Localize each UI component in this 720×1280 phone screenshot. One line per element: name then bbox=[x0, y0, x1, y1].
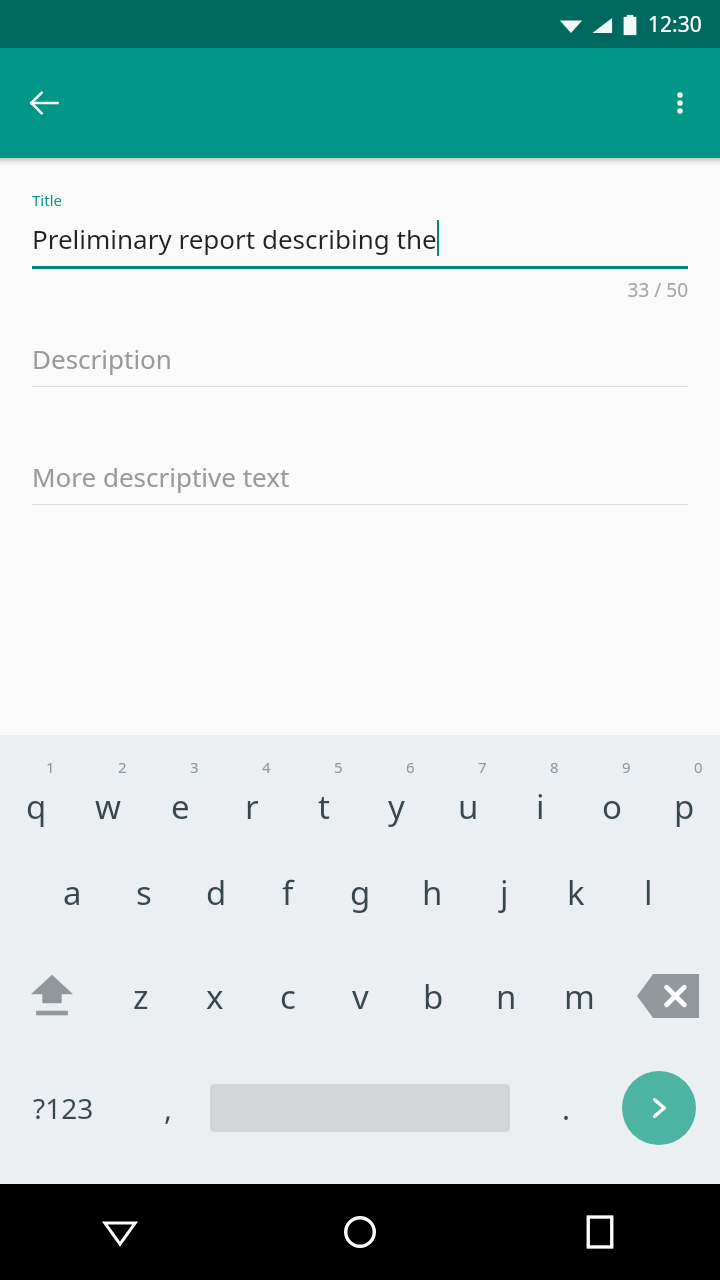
button[interactable]: k bbox=[540, 861, 612, 923]
button[interactable]: r bbox=[216, 757, 288, 835]
button[interactable]: y bbox=[360, 757, 432, 835]
staticText: 7 bbox=[478, 757, 487, 777]
staticText: u bbox=[458, 784, 479, 829]
staticText: y bbox=[388, 784, 405, 829]
staticText: x bbox=[206, 974, 224, 1019]
staticText: ?123 bbox=[33, 1089, 94, 1127]
staticText: 12:30 bbox=[648, 10, 702, 39]
staticText: q bbox=[26, 784, 47, 829]
staticText: 8 bbox=[550, 757, 559, 777]
staticText: n bbox=[496, 974, 517, 1019]
staticText: j bbox=[500, 870, 509, 915]
button[interactable]: h bbox=[396, 861, 468, 923]
button[interactable]: v bbox=[324, 965, 397, 1027]
button[interactable]: More descriptive text bbox=[32, 459, 688, 505]
staticText: d bbox=[206, 870, 227, 915]
button[interactable]: e bbox=[144, 757, 216, 835]
staticText: l bbox=[644, 870, 653, 915]
staticText: e bbox=[171, 784, 190, 829]
staticText: , bbox=[164, 1088, 173, 1129]
button[interactable]: l bbox=[612, 861, 684, 923]
staticText: v bbox=[352, 974, 369, 1019]
button[interactable]: m bbox=[543, 965, 616, 1027]
button[interactable]: z bbox=[104, 965, 178, 1027]
button[interactable]: Back bbox=[16, 75, 72, 131]
staticText: h bbox=[422, 870, 443, 915]
staticText: w bbox=[95, 784, 121, 829]
button[interactable]: f bbox=[252, 861, 324, 923]
staticText: Title bbox=[32, 190, 62, 210]
staticText: i bbox=[536, 784, 545, 829]
staticText: Preliminary report describing the bbox=[32, 221, 437, 256]
button[interactable]: . bbox=[510, 1069, 622, 1147]
staticText: 0 bbox=[694, 757, 703, 777]
staticText: m bbox=[564, 974, 595, 1019]
staticText: 1 bbox=[46, 757, 55, 777]
button[interactable]: Enter bbox=[622, 1071, 696, 1145]
staticText: 6 bbox=[406, 757, 415, 777]
staticText: f bbox=[282, 870, 294, 915]
button[interactable]: a bbox=[36, 861, 108, 923]
button[interactable]: g bbox=[324, 861, 396, 923]
button[interactable]: j bbox=[468, 861, 540, 923]
button[interactable]: q bbox=[0, 757, 72, 835]
staticText: k bbox=[567, 870, 585, 915]
staticText: 2 bbox=[118, 757, 127, 777]
staticText: o bbox=[602, 784, 622, 829]
button[interactable]: Back bbox=[0, 1184, 240, 1280]
staticText: More descriptive text bbox=[32, 459, 290, 494]
button[interactable]: b bbox=[397, 965, 470, 1027]
button[interactable]: More options bbox=[652, 75, 708, 131]
staticText: z bbox=[133, 974, 149, 1019]
staticText: Description bbox=[32, 341, 172, 376]
staticText: 3 bbox=[190, 757, 199, 777]
button[interactable]: Backspace bbox=[616, 965, 720, 1027]
button[interactable]: t bbox=[288, 757, 360, 835]
staticText: 9 bbox=[622, 757, 631, 777]
button[interactable]: Recents bbox=[480, 1184, 720, 1280]
button[interactable]: w bbox=[72, 757, 144, 835]
button[interactable]: s bbox=[108, 861, 180, 923]
staticText: b bbox=[423, 974, 444, 1019]
staticText: c bbox=[280, 974, 296, 1019]
button[interactable]: c bbox=[251, 965, 324, 1027]
staticText: . bbox=[562, 1088, 571, 1129]
staticText: 5 bbox=[334, 757, 343, 777]
button[interactable]: Description bbox=[32, 341, 688, 387]
staticText: p bbox=[674, 784, 695, 829]
staticText: 4 bbox=[262, 757, 271, 777]
staticText: a bbox=[63, 870, 82, 915]
button[interactable]: i bbox=[504, 757, 576, 835]
staticText: r bbox=[245, 784, 259, 829]
staticText: t bbox=[318, 784, 330, 829]
button[interactable]: u bbox=[432, 757, 504, 835]
button[interactable]: p bbox=[648, 757, 720, 835]
button[interactable]: x bbox=[178, 965, 251, 1027]
button[interactable]: n bbox=[470, 965, 543, 1027]
staticText: 33 / 50 bbox=[32, 277, 688, 303]
staticText: s bbox=[136, 870, 152, 915]
button[interactable]: Home bbox=[240, 1184, 480, 1280]
button[interactable]: ?123 bbox=[0, 1069, 126, 1147]
button[interactable]: , bbox=[126, 1069, 210, 1147]
button[interactable]: Shift bbox=[0, 965, 104, 1027]
staticText: g bbox=[350, 870, 371, 915]
button[interactable]: d bbox=[180, 861, 252, 923]
button[interactable]: o bbox=[576, 757, 648, 835]
